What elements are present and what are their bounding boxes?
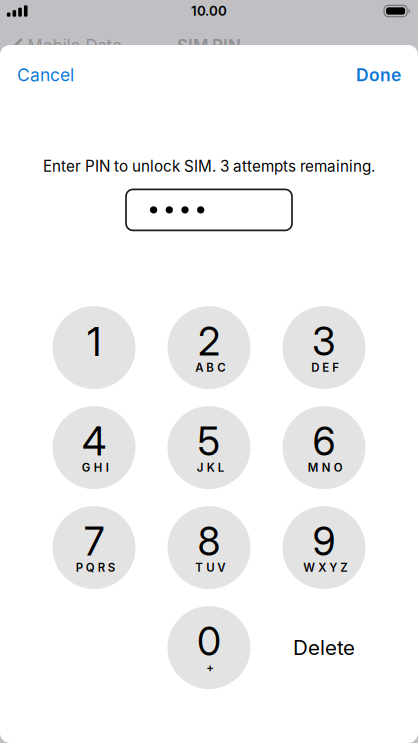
button[interactable]: 2 [167,306,250,389]
staticText: 6 [312,418,335,465]
staticText: 0 [197,618,221,665]
staticText: D E F [311,361,339,375]
staticText: Done [356,64,401,85]
staticText: Delete [293,635,355,660]
staticText: P Q R S [76,561,115,575]
button[interactable]: Done [339,52,418,97]
staticText: Enter PIN to unlock SIM. 3 attempts rema… [43,157,375,175]
button[interactable]: 7 [52,506,135,589]
staticText: 8 [197,518,220,565]
staticText: 1 [87,318,101,365]
button[interactable]: 9 [282,506,365,589]
staticText: A B C [195,361,225,375]
staticText: + [206,661,214,675]
button[interactable]: 8 [167,506,250,589]
button[interactable]: 6 [282,406,365,489]
button[interactable]: Delete [282,606,365,689]
staticText: Cancel [17,64,74,85]
button[interactable]: Cancel [0,52,91,97]
staticText: Mobile Data [28,36,122,56]
button[interactable]: 0 [167,606,250,689]
staticText: 5 [197,418,220,465]
staticText: 10.00 [191,3,227,19]
staticText: G H I [82,461,109,475]
button[interactable]: 3 [282,306,365,389]
staticText: 7 [84,518,104,565]
staticText: J K L [197,461,224,475]
staticText: SIM PIN [177,36,241,56]
staticText: 4 [82,418,106,465]
button[interactable]: 4 [52,406,135,489]
staticText: 2 [198,318,220,365]
button[interactable]: 1 [52,306,135,389]
staticText: M N O [308,461,343,475]
button[interactable]: 5 [167,406,250,489]
staticText: 9 [312,518,335,565]
staticText: T U V [195,561,225,575]
staticText: W X Y Z [303,561,347,575]
staticText: 3 [312,318,336,365]
